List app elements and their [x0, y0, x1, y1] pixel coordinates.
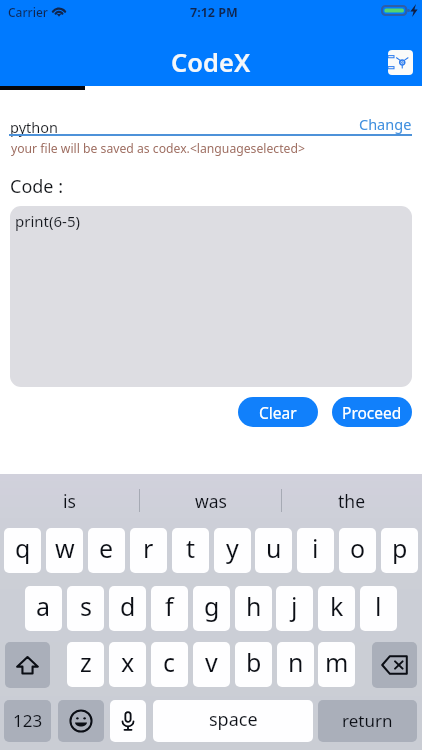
- button[interactable]: the: [282, 474, 422, 520]
- staticText: CodeX: [171, 45, 251, 80]
- staticText: z: [80, 645, 92, 679]
- button[interactable]: m: [318, 642, 355, 687]
- button[interactable]: Workspace: [388, 50, 413, 75]
- staticText: Code :: [10, 174, 63, 199]
- button[interactable]: Change: [344, 113, 412, 134]
- staticText: w: [55, 531, 75, 565]
- staticText: a: [36, 589, 51, 623]
- button[interactable]: return: [318, 700, 417, 742]
- staticText: i: [312, 531, 319, 565]
- button[interactable]: r: [130, 528, 167, 573]
- staticText: m: [325, 645, 349, 679]
- button[interactable]: space: [153, 700, 313, 742]
- staticText: j: [291, 589, 298, 623]
- button[interactable]: 123: [4, 700, 51, 742]
- staticText: Change: [359, 114, 412, 134]
- staticText: 7:12 PM: [190, 4, 238, 21]
- staticText: r: [143, 531, 154, 565]
- button[interactable]: n: [277, 642, 314, 687]
- staticText: u: [266, 531, 282, 565]
- staticText: python: [10, 117, 58, 137]
- button[interactable]: z: [67, 642, 104, 687]
- staticText: o: [350, 531, 366, 565]
- staticText: d: [120, 589, 136, 623]
- button[interactable]: f: [151, 586, 188, 631]
- button[interactable]: l: [360, 586, 397, 631]
- button[interactable]: x: [109, 642, 146, 687]
- staticText: c: [163, 645, 176, 679]
- button[interactable]: Shift: [5, 642, 50, 688]
- button[interactable]: w: [46, 528, 83, 573]
- button[interactable]: y: [214, 528, 251, 573]
- staticText: v: [205, 645, 218, 679]
- staticText: b: [246, 645, 262, 679]
- staticText: print(6-5): [15, 211, 80, 231]
- staticText: the: [338, 489, 366, 513]
- button[interactable]: u: [255, 528, 292, 573]
- staticText: was: [195, 489, 227, 513]
- staticText: space: [209, 707, 258, 732]
- button[interactable]: h: [235, 586, 272, 631]
- staticText: q: [15, 531, 31, 565]
- button[interactable]: e: [88, 528, 125, 573]
- button[interactable]: a: [25, 586, 62, 631]
- button[interactable]: k: [318, 586, 355, 631]
- button[interactable]: s: [67, 586, 104, 631]
- button[interactable]: c: [151, 642, 188, 687]
- button[interactable]: o: [339, 528, 376, 573]
- button[interactable]: Dictation: [110, 700, 146, 742]
- button[interactable]: t: [172, 528, 209, 573]
- staticText: p: [392, 531, 408, 565]
- button[interactable]: g: [193, 586, 230, 631]
- staticText: n: [288, 645, 304, 679]
- button[interactable]: Backspace: [372, 642, 417, 688]
- button[interactable]: j: [276, 586, 313, 631]
- staticText: is: [63, 489, 76, 513]
- staticText: s: [80, 589, 92, 623]
- button[interactable]: Clear: [238, 397, 318, 427]
- staticText: return: [342, 709, 393, 732]
- button[interactable]: was: [140, 474, 281, 520]
- button[interactable]: i: [297, 528, 334, 573]
- staticText: your file will be saved as codex.<langua…: [11, 140, 305, 157]
- staticText: Proceed: [342, 402, 402, 423]
- button[interactable]: v: [193, 642, 230, 687]
- staticText: l: [375, 589, 382, 623]
- staticText: 123: [13, 709, 43, 732]
- button[interactable]: p: [381, 528, 418, 573]
- staticText: f: [165, 589, 174, 623]
- button[interactable]: Proceed: [332, 397, 412, 427]
- staticText: x: [121, 645, 135, 679]
- staticText: y: [226, 531, 239, 565]
- button[interactable]: is: [0, 474, 139, 520]
- staticText: e: [99, 531, 114, 565]
- staticText: g: [204, 589, 220, 623]
- staticText: h: [246, 589, 262, 623]
- button[interactable]: b: [235, 642, 272, 687]
- staticText: Carrier: [8, 4, 48, 20]
- staticText: k: [330, 589, 344, 623]
- button[interactable]: Emoji: [58, 700, 104, 742]
- button[interactable]: q: [4, 528, 41, 573]
- button[interactable]: d: [109, 586, 146, 631]
- staticText: Clear: [259, 402, 297, 423]
- staticText: t: [186, 531, 196, 565]
- button[interactable]: print(6-5): [10, 206, 412, 387]
